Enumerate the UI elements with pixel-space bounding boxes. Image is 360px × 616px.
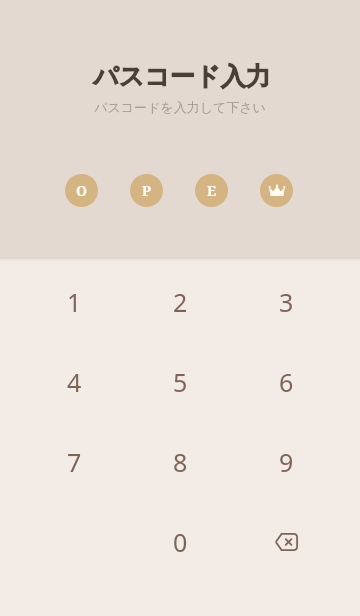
button[interactable]: 2 — [127, 262, 233, 342]
staticText: 4 — [67, 365, 82, 399]
button[interactable]: 8 — [127, 422, 233, 502]
staticText: 3 — [279, 285, 294, 319]
staticText: 9 — [279, 445, 294, 479]
staticText: パスコードを入力して下さい — [94, 99, 266, 115]
button[interactable]: 7 — [21, 422, 127, 502]
staticText: E — [207, 181, 217, 200]
button[interactable]: 0 — [127, 502, 233, 582]
button[interactable]: 9 — [233, 422, 339, 502]
button[interactable]: Delete last digit — [233, 502, 339, 582]
staticText: 1 — [67, 285, 82, 319]
button[interactable]: 3 — [233, 262, 339, 342]
staticText: 0 — [173, 525, 188, 559]
staticText: O — [76, 181, 88, 200]
staticText: 2 — [173, 285, 188, 319]
button[interactable]: 4 — [21, 342, 127, 422]
staticText: 6 — [279, 365, 294, 399]
button[interactable]: 5 — [127, 342, 233, 422]
staticText: P — [142, 181, 151, 200]
staticText: 5 — [173, 365, 188, 399]
staticText: 8 — [173, 445, 188, 479]
button[interactable]: 6 — [233, 342, 339, 422]
staticText: パスコード入力 — [93, 61, 271, 92]
button[interactable]: 1 — [21, 262, 127, 342]
staticText: 7 — [67, 445, 82, 479]
